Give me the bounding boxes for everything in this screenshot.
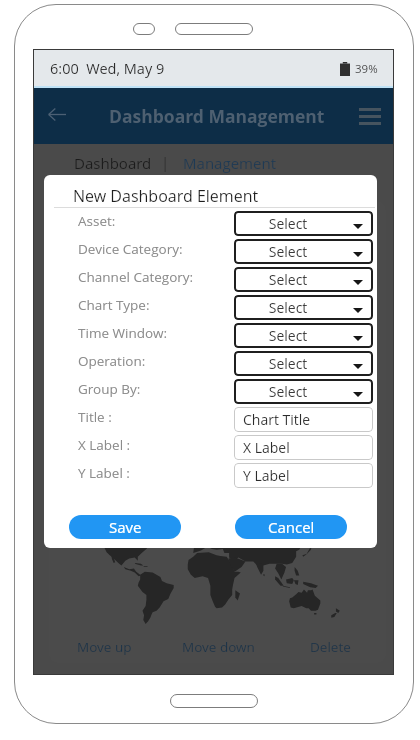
staticText: 6:00 Wed, May 9 xyxy=(50,59,165,79)
staticText: Device Category: xyxy=(78,240,183,258)
button[interactable]: X Label xyxy=(234,435,373,460)
staticText: Cancel xyxy=(268,517,315,537)
button[interactable]: Move down xyxy=(178,635,259,659)
button[interactable]: Select xyxy=(234,351,373,376)
staticText: Y Label xyxy=(243,466,290,485)
staticText: Select xyxy=(234,242,342,261)
staticText: New Dashboard Element xyxy=(73,185,259,207)
staticText: X Label : xyxy=(78,436,131,454)
button[interactable]: Management xyxy=(181,151,278,175)
button[interactable]: Select xyxy=(234,211,373,236)
staticText: Select xyxy=(234,382,342,401)
staticText: | xyxy=(161,152,170,172)
staticText: 39% xyxy=(355,61,378,77)
staticText: Move up xyxy=(77,638,132,656)
staticText: Select xyxy=(234,326,342,345)
staticText: Select xyxy=(234,214,342,233)
button[interactable]: Delete xyxy=(306,635,355,659)
button[interactable]: Select xyxy=(234,379,373,404)
staticText: Select xyxy=(234,270,342,289)
staticText: Delete xyxy=(310,638,351,656)
staticText: X Label xyxy=(243,438,290,457)
button[interactable]: Move up xyxy=(73,635,136,659)
button[interactable]: Select xyxy=(234,239,373,264)
button[interactable]: Select xyxy=(234,295,373,320)
staticText: Save xyxy=(109,517,142,537)
staticText: Dashboard Management xyxy=(109,104,325,128)
staticText: Chart Title xyxy=(243,410,311,429)
button[interactable]: Save xyxy=(69,515,181,539)
button[interactable]: Chart Title xyxy=(234,407,373,432)
staticText: Chart Type: xyxy=(78,296,150,314)
button[interactable]: Back xyxy=(38,95,76,133)
button[interactable]: Cancel xyxy=(235,515,347,539)
staticText: Channel Category: xyxy=(78,268,194,286)
button[interactable]: Dashboard xyxy=(72,151,154,175)
staticText: Time Window: xyxy=(78,324,167,342)
button[interactable]: Select xyxy=(234,267,373,292)
staticText: Group By: xyxy=(78,380,141,398)
staticText: Move down xyxy=(182,638,255,656)
staticText: Y Label : xyxy=(78,464,130,482)
button[interactable]: Select xyxy=(234,323,373,348)
staticText: Title : xyxy=(78,408,112,426)
staticText: Select xyxy=(234,298,342,317)
staticText: Asset: xyxy=(78,212,116,230)
staticText: Management xyxy=(183,153,276,173)
staticText: Dashboard xyxy=(74,153,152,173)
button[interactable]: Y Label xyxy=(234,463,373,488)
staticText: Operation: xyxy=(78,352,146,370)
staticText: Select xyxy=(234,354,342,373)
button[interactable]: Menu xyxy=(351,97,389,135)
